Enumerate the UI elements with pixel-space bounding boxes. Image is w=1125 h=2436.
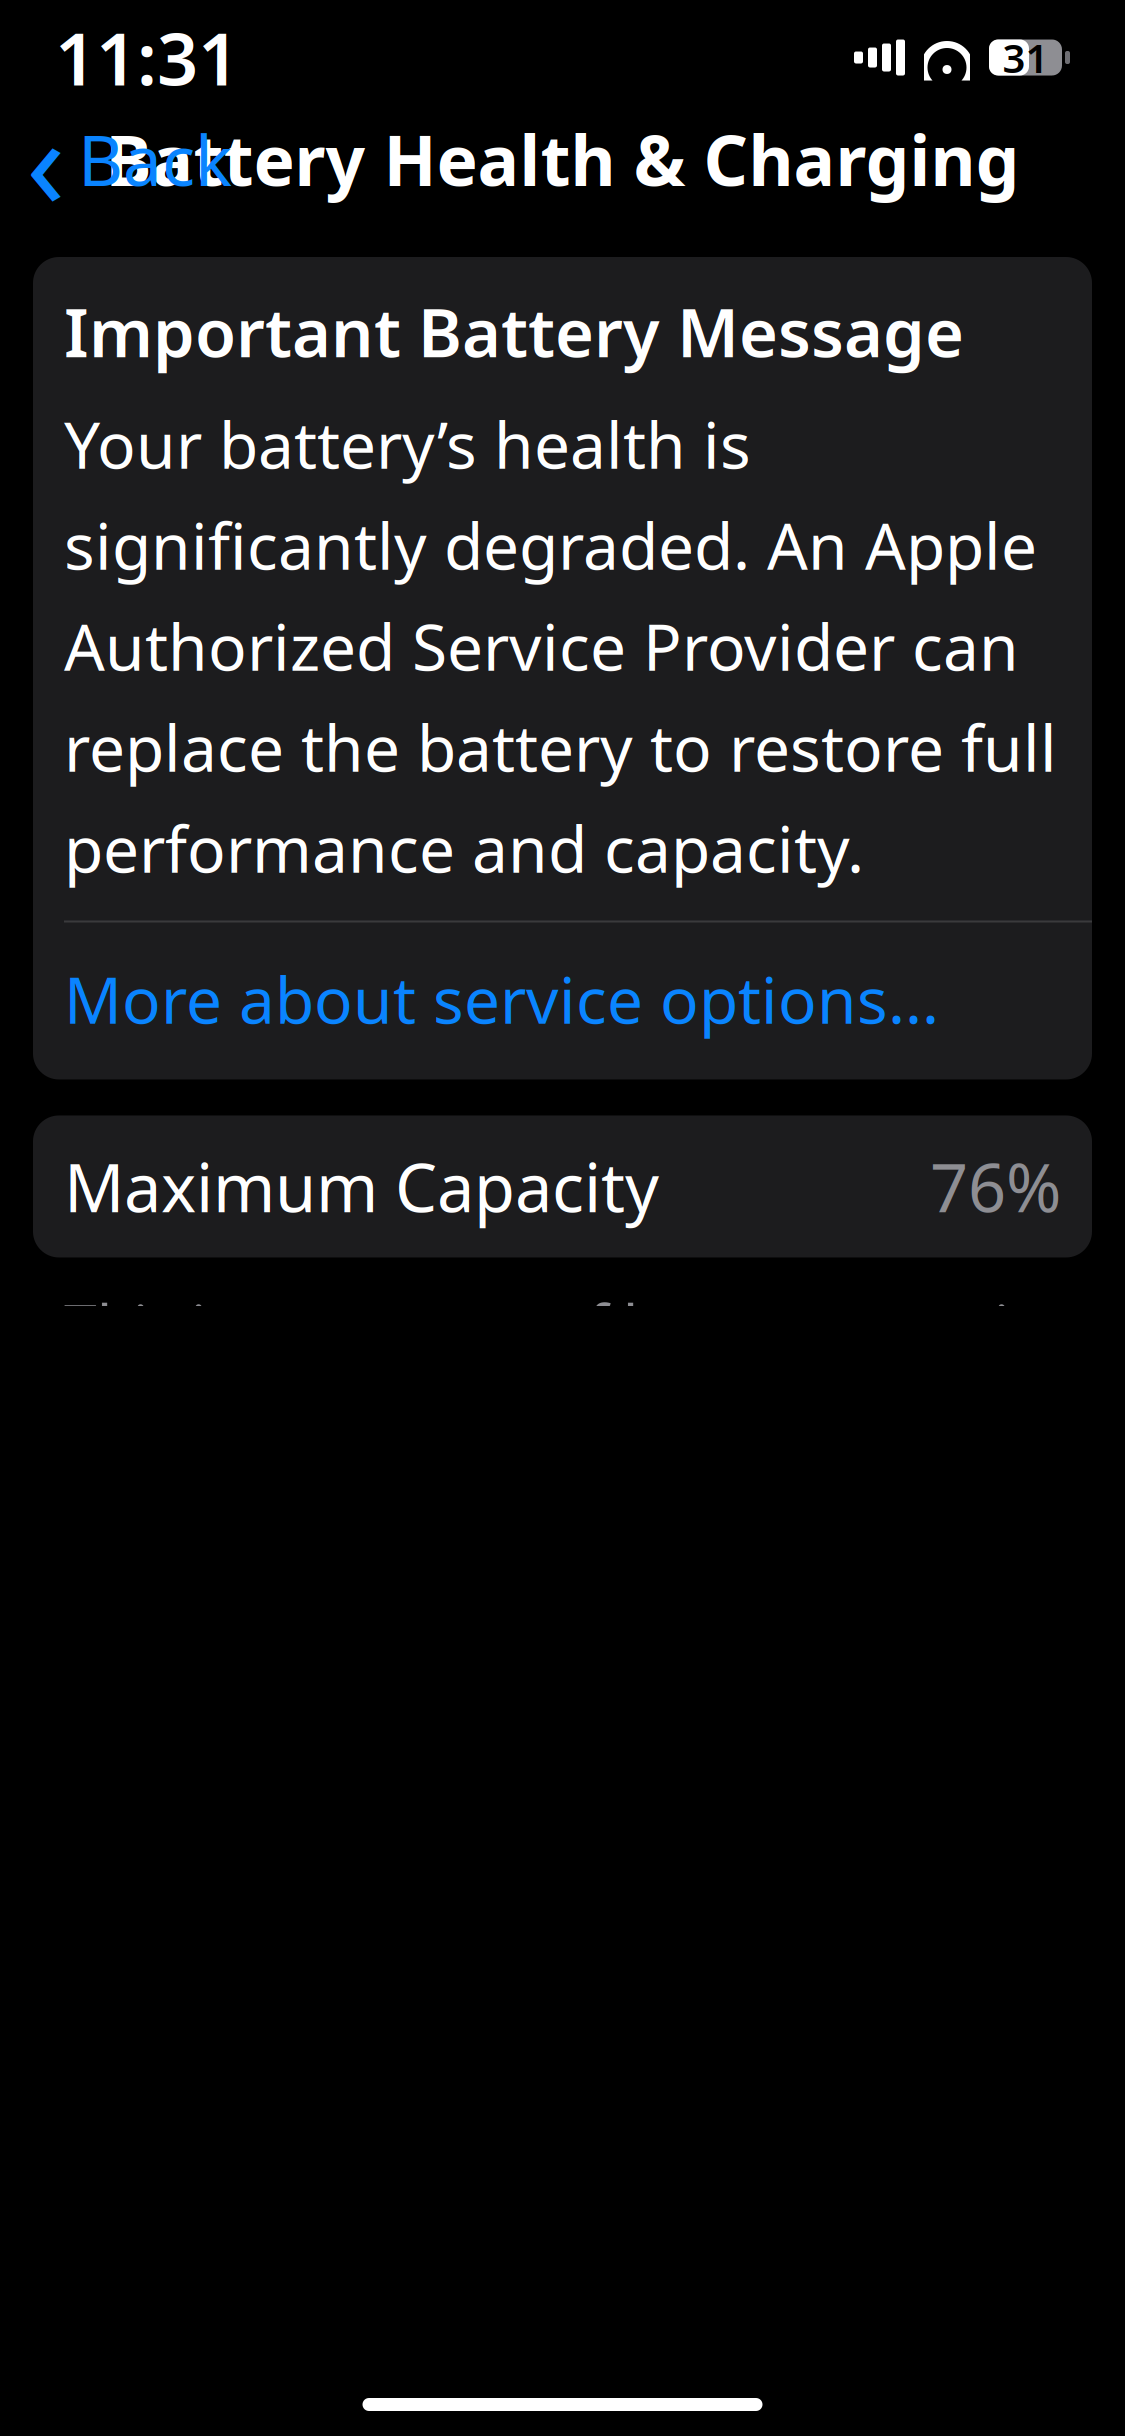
staticText: 11:31 [55,10,239,105]
staticText: Maximum Capacity [64,1142,659,1231]
staticText: Your battery’s health is significantly d… [64,401,1057,890]
staticText: To reduce battery aging, iPhone learns f… [64,2195,1051,2436]
staticText: Battery Health & Charging [105,113,1019,205]
staticText: More about service options... [64,956,939,1041]
button[interactable]: ‹ [8,109,250,209]
staticText: 31 [1002,31,1048,84]
staticText: ‹ [26,74,66,244]
staticText: Important Battery Message [64,287,964,375]
button[interactable]: Maximum Capacity [33,1115,1092,1257]
button[interactable]: More about service options... [33,922,1092,1079]
staticText: Back [78,113,232,205]
staticText: 76% [930,1142,1061,1231]
